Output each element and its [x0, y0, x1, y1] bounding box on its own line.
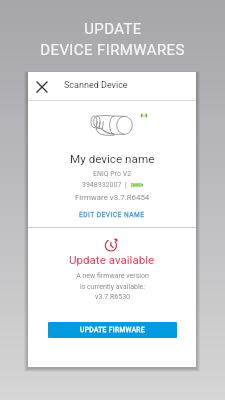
button[interactable]: UPDATE FIRMWARE — [48, 322, 177, 338]
button[interactable]: EDIT DEVICE NAME — [71, 208, 153, 222]
staticText: Scanned Device — [64, 80, 128, 91]
staticText: 3948932007 — [82, 181, 122, 189]
staticText: DEVICE FIRMWARES — [40, 41, 185, 59]
staticText: ENiQ Pro V2 — [93, 170, 132, 178]
button[interactable]: Close — [33, 78, 51, 96]
staticText: My device name — [70, 152, 155, 166]
staticText: A new firmware version is currently avai… — [76, 272, 149, 301]
staticText: | — [125, 181, 127, 189]
staticText: UPDATE — [84, 20, 142, 38]
staticText: Firmware v3.7.R6454 — [75, 193, 150, 202]
staticText: Update available — [69, 253, 155, 267]
staticText: UPDATE FIRMWARE — [80, 326, 145, 334]
staticText: EDIT DEVICE NAME — [79, 211, 145, 219]
